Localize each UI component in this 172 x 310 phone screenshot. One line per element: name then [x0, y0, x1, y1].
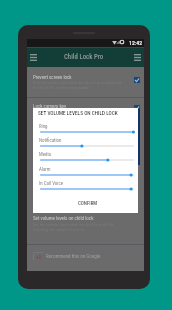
- staticText: In Call Voice: [39, 180, 63, 186]
- button[interactable]: [27, 211, 144, 244]
- staticText: Ring: [39, 123, 48, 129]
- staticText: Alarm: [39, 166, 51, 172]
- button[interactable]: [27, 245, 144, 264]
- button[interactable]: More options: [133, 51, 142, 63]
- button[interactable]: [27, 67, 144, 97]
- staticText: Lock the camera hardware key while child…: [33, 109, 131, 119]
- button[interactable]: [27, 98, 144, 118]
- staticText: Media: [39, 151, 51, 157]
- staticText: Set volume levels on child lock: [33, 215, 94, 221]
- staticText: SET VOLUME LEVELS ON CHILD LOCK: [38, 110, 118, 116]
- staticText: +1: [36, 254, 42, 260]
- staticText: Notification: [39, 137, 62, 143]
- button[interactable]: Open navigation drawer: [29, 51, 38, 63]
- staticText: Child Lock Pro: [64, 53, 104, 61]
- staticText: Prevent screen lock: [33, 74, 72, 80]
- staticText: Recommend this on Google: [46, 253, 101, 259]
- staticText: CONFIRM: [78, 200, 98, 206]
- staticText: Lock camera key: [33, 103, 66, 109]
- staticText: 12:42: [129, 40, 143, 47]
- button[interactable]: CONFIRM: [33, 196, 138, 210]
